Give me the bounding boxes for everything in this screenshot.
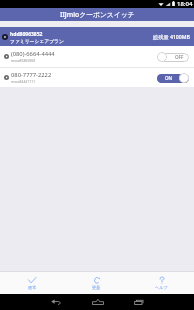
- button[interactable]: ヘルプ: [129, 277, 194, 290]
- button[interactable]: 更新: [64, 277, 129, 290]
- staticText: 080-7777-2222: [11, 71, 52, 79]
- staticText: 通常: [28, 285, 37, 290]
- button[interactable]: Switch on: [157, 73, 189, 83]
- staticText: IIJmioクーポンスイッチ: [60, 10, 135, 19]
- button[interactable]: hdd80963852: [0, 27, 194, 46]
- staticText: OFF: [175, 54, 184, 60]
- button[interactable]: 080-7777-2222: [0, 68, 194, 87]
- button[interactable]: 通常: [0, 277, 64, 290]
- staticText: ファミリーシェアプラン: [10, 38, 64, 44]
- staticText: ヘルプ: [155, 285, 168, 290]
- staticText: mxxx85865868: [11, 58, 36, 63]
- staticText: mxxx84441111: [11, 79, 36, 84]
- staticText: hdd80963852: [10, 31, 43, 38]
- button[interactable]: (080)-6664-4444: [0, 46, 194, 67]
- staticText: ON: [165, 75, 173, 81]
- staticText: 更新: [92, 285, 101, 290]
- staticText: (080)-6664-4444: [11, 50, 55, 58]
- button[interactable]: Recents: [129, 294, 150, 310]
- button[interactable]: Home: [87, 294, 108, 310]
- button[interactable]: Back: [45, 294, 66, 310]
- staticText: 総残量 4100MB: [153, 33, 190, 40]
- button[interactable]: Switch off: [157, 52, 189, 62]
- staticText: 18:04: [177, 0, 193, 8]
